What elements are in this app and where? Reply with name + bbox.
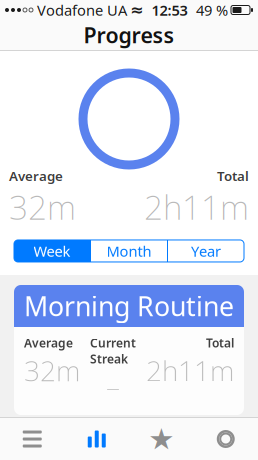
button[interactable]: Week [14, 240, 90, 262]
staticText: Year [191, 241, 221, 261]
button[interactable]: Year [168, 240, 244, 262]
staticText: Morning Routine [24, 288, 234, 324]
staticText: Month [106, 241, 151, 261]
staticText: Total [217, 167, 249, 185]
button[interactable]: Month [91, 240, 167, 262]
button[interactable]: Settings [193, 418, 258, 460]
staticText: 2h11m [146, 352, 234, 389]
staticText: Current Streak [90, 335, 136, 367]
button[interactable]: Routines [0, 418, 64, 460]
staticText: Week [33, 241, 70, 261]
staticText: Total [206, 335, 234, 351]
staticText: 49 % [196, 0, 228, 20]
button[interactable]: Morning Routine [14, 285, 244, 415]
staticText: – [106, 368, 120, 405]
staticText: ≈ [130, 1, 143, 19]
staticText: Progress [83, 21, 174, 49]
staticText: Vodafone UA [37, 0, 127, 20]
staticText: Average [24, 335, 73, 351]
staticText: 32m [9, 185, 76, 229]
staticText: 32m [24, 352, 80, 389]
staticText: Average [9, 167, 63, 185]
staticText: ★ [148, 422, 174, 456]
button[interactable]: Progress [64, 418, 129, 460]
button[interactable]: Favorites [129, 418, 193, 460]
staticText: 12:53 [151, 0, 187, 20]
staticText: 2h11m [144, 185, 249, 229]
